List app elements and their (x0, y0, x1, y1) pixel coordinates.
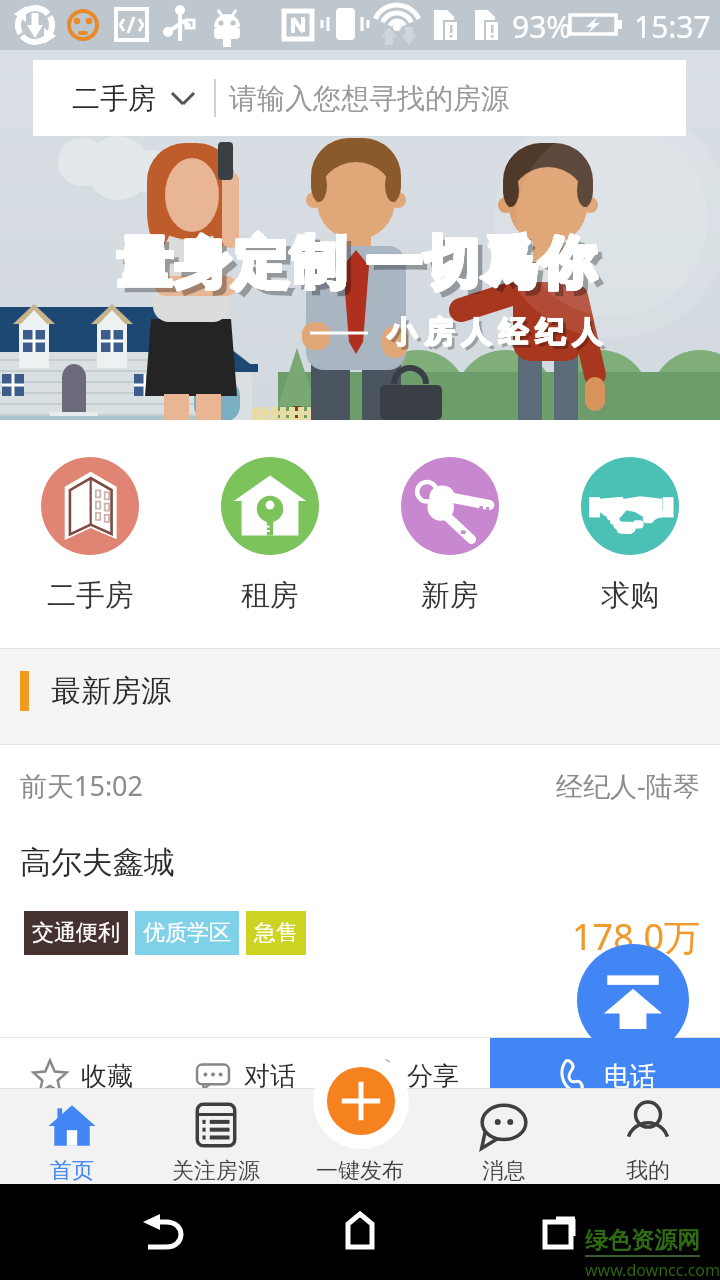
button[interactable]: Scroll to top (577, 944, 689, 1056)
staticText: 二手房 (72, 81, 156, 116)
button[interactable]: Home (315, 1184, 405, 1280)
button[interactable]: 电话 (490, 1038, 720, 1114)
staticText: 请输入您想寻找的房源 (229, 81, 509, 116)
staticText: 量身定制 一切爲你 (116, 223, 598, 298)
button[interactable]: 新房 (360, 420, 540, 648)
staticText: 178.0万 (572, 912, 701, 961)
staticText: 小房人经纪人 (383, 313, 605, 351)
staticText: 租房 (241, 577, 299, 614)
button[interactable]: 前天15:02 (0, 745, 720, 1037)
staticText: 电话 (604, 1060, 656, 1093)
button[interactable]: 收藏 (0, 1038, 163, 1114)
button[interactable]: 我的 (576, 1088, 720, 1184)
staticText: 量身定制 一切爲你 (117, 222, 599, 297)
staticText: 收藏 (81, 1060, 133, 1093)
staticText: 新房 (421, 577, 479, 614)
staticText: 量身定制 一切爲你 (117, 224, 599, 299)
staticText: 前天15:02 (20, 767, 144, 804)
staticText: 优质学区 (143, 919, 231, 947)
staticText: 量身定制 一切爲你 (117, 223, 599, 298)
button[interactable]: 关注房源 (144, 1088, 288, 1184)
staticText: 交通便利 (32, 919, 120, 947)
staticText: 量身定制 一切爲你 (118, 223, 600, 298)
button[interactable]: 租房 (180, 420, 360, 648)
staticText: 我的 (626, 1157, 670, 1184)
staticText: 绿色资源网 (585, 1226, 700, 1255)
button[interactable]: 首页 (0, 1088, 144, 1184)
staticText: 15:37 (634, 6, 711, 47)
staticText: 求购 (601, 577, 659, 614)
staticText: 量身定制 一切爲你 (118, 224, 600, 299)
staticText: 消息 (482, 1157, 526, 1184)
staticText: 急售 (254, 919, 298, 947)
staticText: 93% (512, 6, 572, 47)
staticText: 量身定制 一切爲你 (116, 224, 598, 299)
staticText: 量身定制 一切爲你 (118, 222, 600, 297)
button[interactable]: 一键发布 (288, 1088, 432, 1184)
staticText: 经纪人-陆琴 (556, 767, 700, 804)
staticText: www.downcc.com (585, 1259, 720, 1280)
button[interactable]: 二手房 (33, 60, 686, 136)
staticText: 一键发布 (316, 1157, 404, 1184)
button[interactable]: 二手房 (0, 420, 180, 648)
staticText: 小房人经纪人 (384, 313, 606, 351)
button[interactable]: Back (120, 1184, 210, 1280)
staticText: 小房人经纪人 (384, 314, 606, 352)
button[interactable]: 消息 (432, 1088, 576, 1184)
staticText: 量身定制 一切爲你 (116, 222, 598, 297)
button[interactable]: 对话 (163, 1038, 326, 1114)
staticText: 二手房 (47, 577, 134, 614)
staticText: 分享 (407, 1060, 459, 1093)
staticText: 首页 (50, 1157, 94, 1184)
staticText: 最新房源 (51, 672, 171, 710)
staticText: 对话 (244, 1060, 296, 1093)
button[interactable]: Recent apps (515, 1184, 605, 1280)
button[interactable]: 一键发布 (313, 1053, 409, 1149)
staticText: 小房人经纪人 (387, 317, 609, 355)
button[interactable]: 求购 (540, 420, 720, 648)
staticText: 高尔夫鑫城 (20, 843, 175, 882)
staticText: 小房人经纪人 (383, 314, 605, 352)
staticText: 关注房源 (172, 1157, 260, 1184)
staticText: 量身定制 一切爲你 (123, 229, 605, 304)
button[interactable]: 分享 (326, 1038, 490, 1114)
